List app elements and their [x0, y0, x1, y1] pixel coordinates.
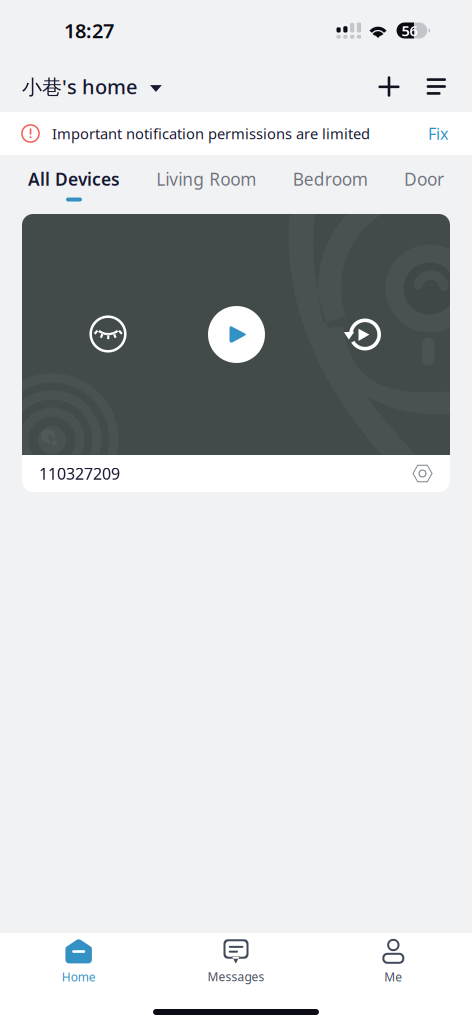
- button[interactable]: Home: [0, 933, 157, 991]
- button[interactable]: Device settings: [412, 455, 450, 492]
- button[interactable]: Messages: [157, 933, 315, 991]
- staticText: 18:27: [64, 17, 114, 44]
- staticText: Bedroom: [293, 167, 368, 190]
- staticText: Important notification permissions are l…: [52, 124, 370, 143]
- button[interactable]: Menu: [414, 68, 472, 105]
- staticText: Fix: [428, 123, 448, 144]
- button[interactable]: Me: [315, 933, 472, 991]
- button[interactable]: Play live view: [208, 306, 265, 363]
- staticText: 小巷's home: [22, 73, 137, 100]
- staticText: Me: [384, 969, 402, 985]
- button[interactable]: Privacy mode: [90, 316, 127, 353]
- staticText: Messages: [207, 969, 264, 985]
- button[interactable]: Playback: [346, 318, 379, 350]
- button[interactable]: Fix: [418, 114, 472, 153]
- staticText: 56: [402, 21, 418, 40]
- staticText: 110327209: [39, 463, 120, 484]
- staticText: Living Room: [156, 167, 256, 190]
- staticText: Door: [404, 167, 444, 190]
- button[interactable]: Add device: [364, 66, 414, 107]
- button[interactable]: 小巷's home: [0, 65, 162, 108]
- button[interactable]: Living Room: [156, 158, 256, 210]
- staticText: All Devices: [28, 167, 120, 190]
- button[interactable]: Door: [404, 158, 444, 210]
- button[interactable]: All Devices: [28, 158, 120, 210]
- staticText: Home: [62, 969, 96, 985]
- button[interactable]: Bedroom: [293, 158, 368, 210]
